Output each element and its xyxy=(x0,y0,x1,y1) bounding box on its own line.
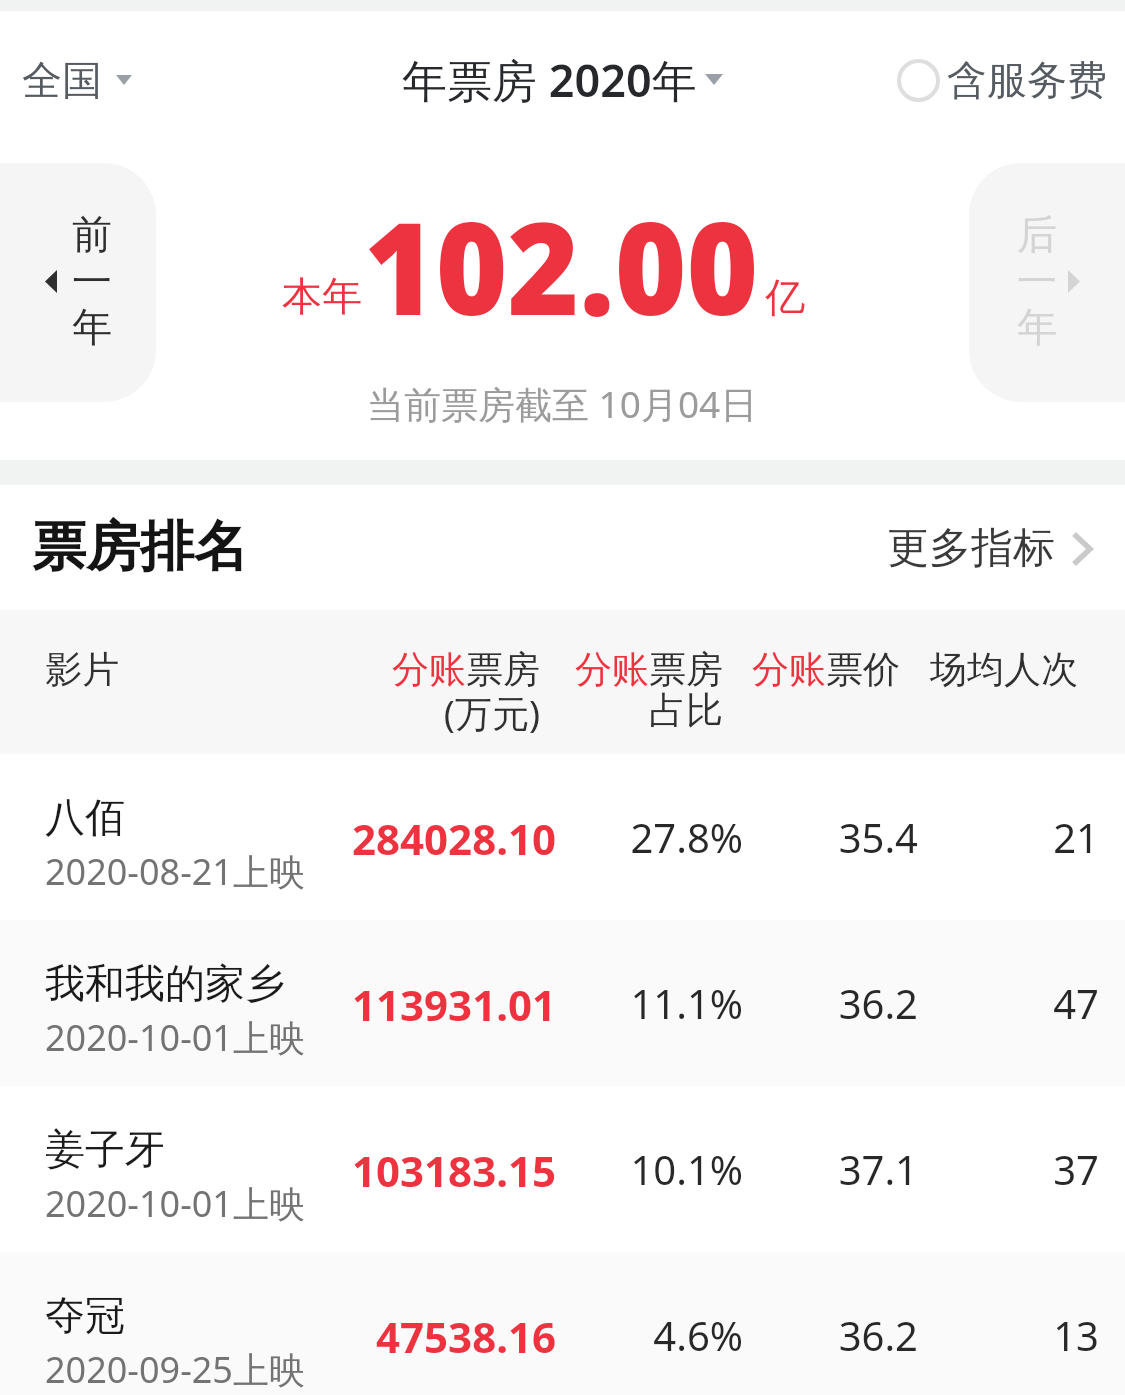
staticText: 票房排名 xyxy=(32,513,248,581)
staticText: 47 xyxy=(918,976,1099,1030)
staticText: 一 xyxy=(1017,256,1057,306)
staticText: 284028.10 xyxy=(330,810,556,867)
button[interactable]: 更多指标 xyxy=(877,504,1103,593)
button[interactable]: 姜子牙 xyxy=(0,1086,1125,1252)
staticText: 113931.01 xyxy=(330,976,556,1033)
staticText: 前 xyxy=(72,209,112,259)
staticText: 10.1% xyxy=(556,1142,743,1196)
staticText: 21 xyxy=(918,810,1099,864)
staticText: 场均人次 xyxy=(929,646,1078,693)
button[interactable]: 后一年 xyxy=(969,163,1125,402)
staticText: 27.8% xyxy=(556,810,743,864)
button[interactable]: 年票房 2020年 xyxy=(396,43,729,116)
staticText: 37 xyxy=(918,1142,1099,1196)
staticText: 2020-10-01上映 xyxy=(45,1013,305,1062)
staticText: 103183.15 xyxy=(330,1142,556,1199)
staticText: 年票房 2020年 xyxy=(402,49,697,110)
staticText: 本年 xyxy=(282,271,362,321)
staticText: 八佰 xyxy=(45,792,125,842)
button[interactable]: 我和我的家乡 xyxy=(0,920,1125,1086)
staticText: 分账票价 xyxy=(751,646,900,693)
staticText: 年 xyxy=(1017,302,1057,352)
staticText: (万元) xyxy=(391,687,540,738)
button[interactable]: 全国 xyxy=(10,35,144,125)
staticText: 一 xyxy=(72,256,112,306)
staticText: 11.1% xyxy=(556,976,743,1030)
button[interactable]: 夺冠 xyxy=(0,1252,1125,1395)
staticText: 2020-08-21上映 xyxy=(45,847,305,896)
button[interactable]: 前一年 xyxy=(0,163,156,402)
staticText: 亿 xyxy=(765,272,805,322)
staticText: 2020-10-01上映 xyxy=(45,1179,305,1228)
staticText: 我和我的家乡 xyxy=(45,958,285,1008)
staticText: 36.2 xyxy=(743,976,918,1030)
staticText: 分账票房 xyxy=(391,646,540,693)
staticText: 年 xyxy=(72,302,112,352)
staticText: 后 xyxy=(1017,209,1057,259)
staticText: 36.2 xyxy=(743,1308,918,1362)
staticText: 35.4 xyxy=(743,810,918,864)
staticText: 13 xyxy=(918,1308,1099,1362)
staticText: 更多指标 xyxy=(887,522,1055,575)
staticText: 102.00 xyxy=(364,178,759,352)
button[interactable]: 八佰 xyxy=(0,754,1125,920)
staticText: 37.1 xyxy=(743,1142,918,1196)
staticText: 当前票房截至 10月04日 xyxy=(367,378,758,429)
staticText: 夺冠 xyxy=(45,1290,125,1340)
staticText: 含服务费 xyxy=(947,55,1107,105)
staticText: 影片 xyxy=(45,646,119,693)
staticText: 分账票房 xyxy=(574,646,723,693)
staticText: 4.6% xyxy=(556,1308,743,1362)
staticText: 2020-09-25上映 xyxy=(45,1345,305,1394)
staticText: 占比 xyxy=(649,687,723,734)
staticText: 姜子牙 xyxy=(45,1124,165,1174)
button[interactable]: 含服务费 xyxy=(885,35,1119,125)
staticText: 47538.16 xyxy=(330,1308,556,1365)
staticText: 全国 xyxy=(22,55,102,105)
